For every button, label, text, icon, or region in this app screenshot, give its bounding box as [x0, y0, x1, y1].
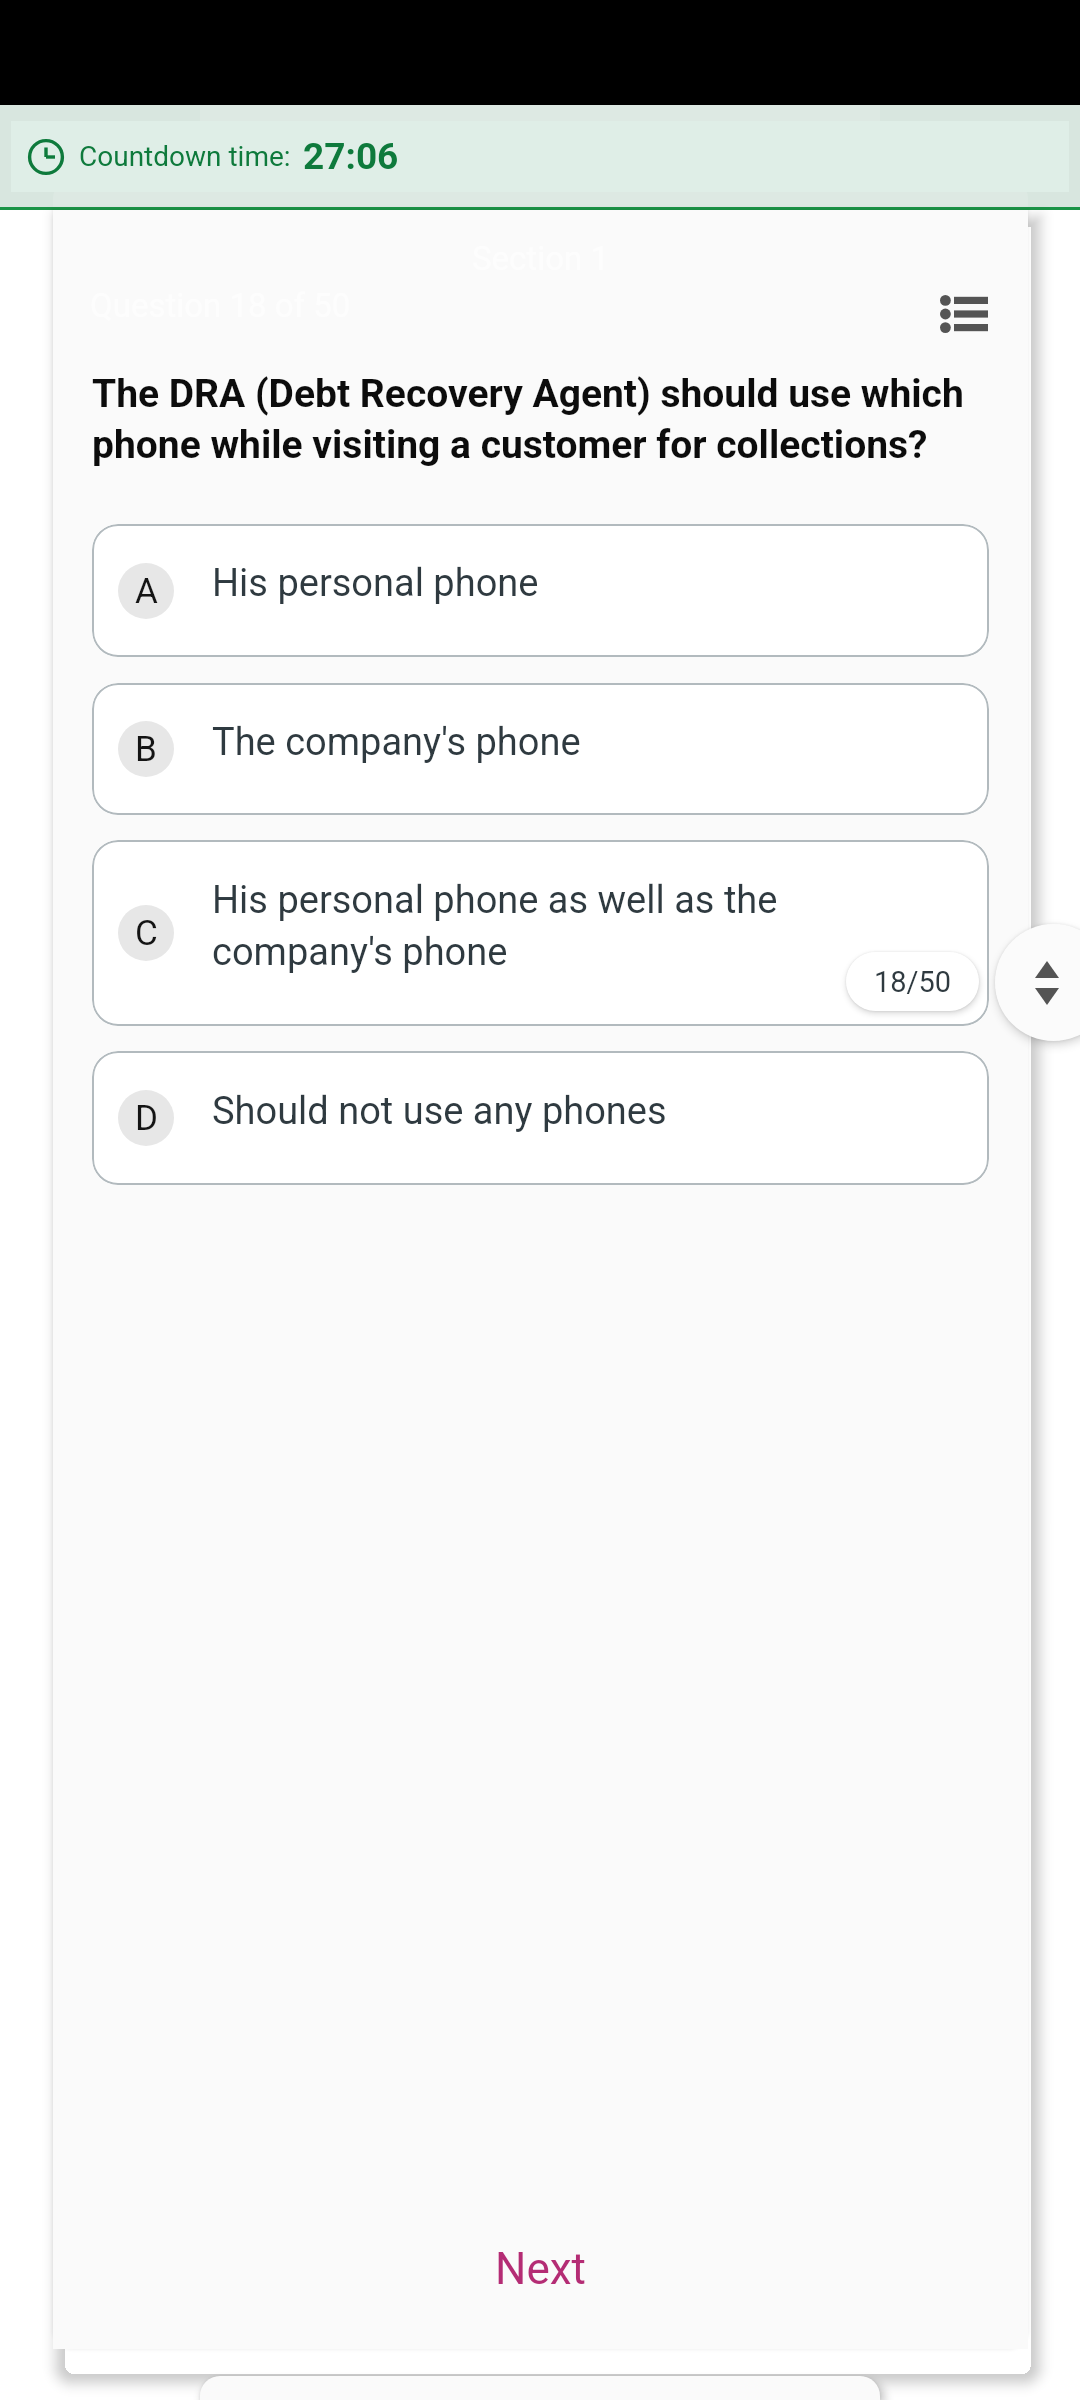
staticText: D	[135, 1098, 158, 1139]
staticText: Should not use any phones	[212, 1089, 667, 1134]
button[interactable]: Question list	[922, 272, 1006, 356]
button[interactable]: Scroll	[995, 924, 1080, 1041]
staticText: C	[135, 913, 158, 954]
button[interactable]: C	[92, 840, 989, 1026]
staticText: B	[135, 729, 157, 770]
staticText: Next	[495, 2243, 586, 2295]
button[interactable]: 18/50	[846, 952, 979, 1011]
button[interactable]: Next	[53, 2189, 1028, 2349]
staticText: Countdown time:	[79, 140, 291, 173]
staticText: A	[135, 571, 158, 612]
staticText: The DRA (Debt Recovery Agent) should use…	[92, 371, 1013, 468]
staticText: His personal phone	[212, 561, 539, 606]
button[interactable]: D	[92, 1051, 989, 1185]
staticText: His personal phone as well as the compan…	[212, 878, 939, 974]
staticText: 18/50	[874, 965, 952, 999]
staticText: The company's phone	[212, 720, 581, 765]
staticText: 27:06	[303, 135, 399, 178]
button[interactable]: A	[92, 524, 989, 657]
button[interactable]: B	[92, 683, 989, 815]
